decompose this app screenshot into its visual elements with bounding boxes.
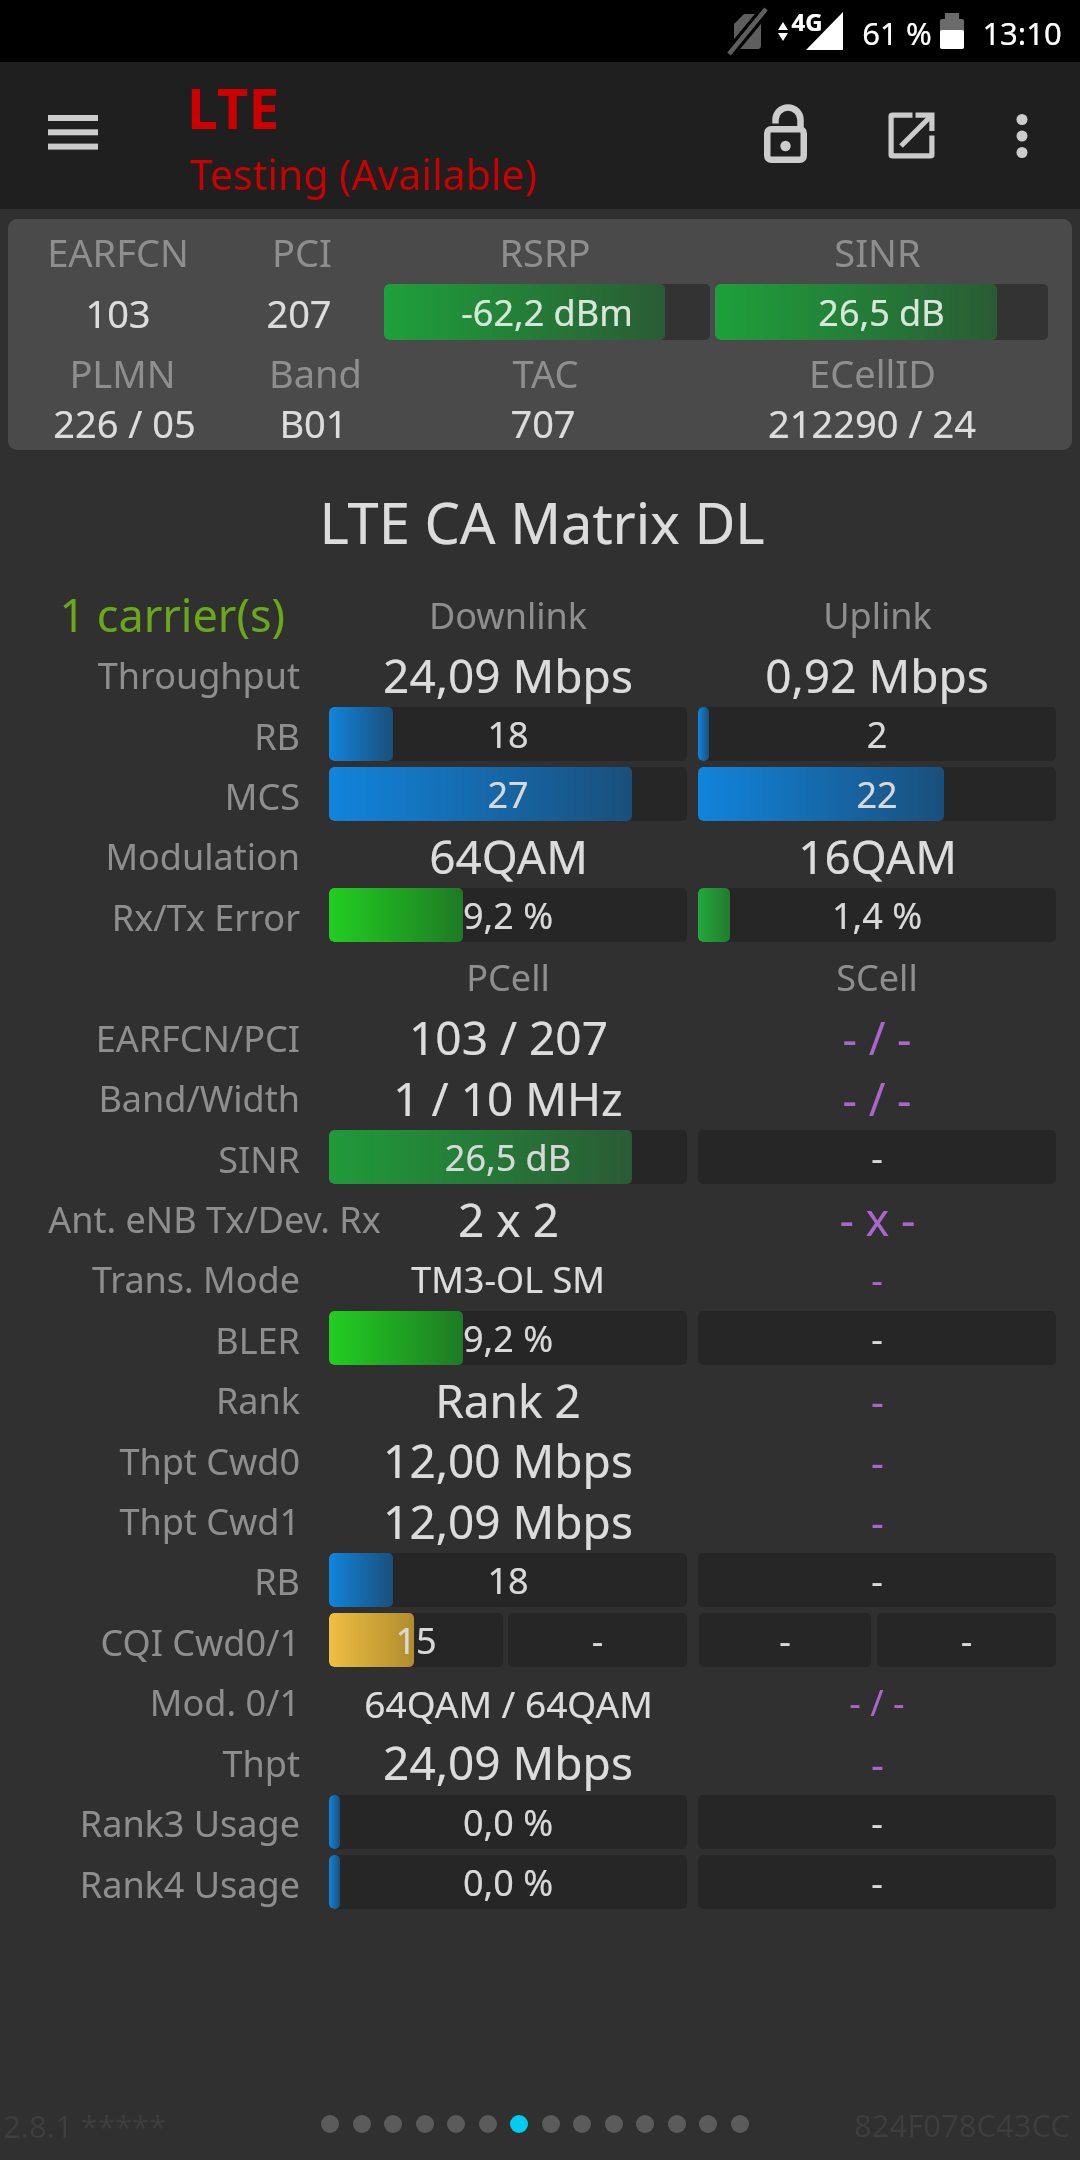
- staticText: -: [877, 1616, 1056, 1665]
- staticText: 13:10: [982, 12, 1062, 54]
- staticText: - x -: [839, 1188, 916, 1249]
- staticText: 207: [266, 287, 332, 339]
- staticText: MCS: [224, 772, 300, 821]
- staticText: Thpt: [222, 1739, 300, 1788]
- staticText: LTE CA Matrix DL: [319, 484, 765, 560]
- staticText: Downlink: [429, 591, 587, 640]
- button[interactable]: Page 1: [314, 2108, 346, 2140]
- button[interactable]: Page 4: [409, 2108, 441, 2140]
- button[interactable]: Page 6: [472, 2108, 504, 2140]
- staticText: 707: [510, 397, 576, 449]
- staticText: -: [698, 1133, 1056, 1182]
- staticText: -: [871, 1255, 883, 1304]
- staticText: Mod. 0/1: [149, 1678, 300, 1727]
- staticText: 24,09 Mbps: [383, 644, 633, 707]
- button[interactable]: Page 11: [629, 2108, 661, 2140]
- staticText: Throughput: [97, 651, 300, 700]
- staticText: Band/Width: [98, 1074, 300, 1123]
- staticText: 226 / 05: [53, 397, 196, 449]
- staticText: 1,4 %: [698, 891, 1056, 940]
- staticText: 18: [329, 710, 687, 759]
- staticText: SCell: [836, 953, 918, 1002]
- staticText: 2 x 2: [458, 1188, 559, 1251]
- staticText: 1 / 10 MHz: [393, 1067, 623, 1130]
- staticText: TM3-OL SM: [411, 1255, 605, 1304]
- button[interactable]: More options: [967, 81, 1077, 191]
- staticText: PLMN: [69, 347, 176, 399]
- staticText: Rank: [215, 1376, 300, 1425]
- staticText: ECellID: [809, 347, 936, 399]
- staticText: 9,2 %: [329, 1314, 687, 1363]
- staticText: CQI Cwd0/1: [100, 1618, 300, 1667]
- staticText: Band: [269, 347, 362, 399]
- staticText: SINR: [834, 226, 921, 278]
- staticText: Trans. Mode: [92, 1255, 300, 1304]
- staticText: Ant. eNB Tx/Dev. Rx: [48, 1195, 381, 1244]
- staticText: Thpt Cwd0: [119, 1437, 300, 1486]
- staticText: -62,2 dBm: [384, 288, 710, 337]
- button[interactable]: Unlock: [730, 79, 841, 190]
- staticText: 26,5 dB: [715, 288, 1048, 337]
- staticText: 26,5 dB: [329, 1133, 687, 1182]
- staticText: -: [871, 1434, 884, 1488]
- button[interactable]: Page 2: [346, 2108, 378, 2140]
- staticText: 12,09 Mbps: [383, 1490, 633, 1553]
- button[interactable]: Page 10: [598, 2108, 630, 2140]
- staticText: TAC: [512, 347, 579, 399]
- staticText: 2: [698, 710, 1056, 759]
- staticText: -: [508, 1616, 687, 1665]
- staticText: LTE: [187, 70, 280, 145]
- staticText: Rank3 Usage: [79, 1799, 300, 1848]
- staticText: Rank4 Usage: [79, 1860, 300, 1909]
- button[interactable]: Page 7: [503, 2108, 535, 2140]
- staticText: -: [699, 1616, 871, 1665]
- staticText: Modulation: [105, 832, 300, 881]
- button[interactable]: Navigation menu: [18, 77, 128, 187]
- staticText: RB: [254, 712, 300, 761]
- staticText: RB: [254, 1557, 300, 1606]
- staticText: 12,00 Mbps: [383, 1429, 633, 1492]
- staticText: 22: [698, 770, 1056, 819]
- staticText: Rx/Tx Error: [111, 893, 300, 942]
- staticText: 18: [329, 1556, 687, 1605]
- staticText: 64QAM / 64QAM: [364, 1678, 653, 1728]
- button[interactable]: Page 5: [440, 2108, 472, 2140]
- button[interactable]: Page 8: [535, 2108, 567, 2140]
- staticText: PCell: [466, 953, 550, 1002]
- staticText: 64QAM: [429, 825, 588, 888]
- button[interactable]: Page 9: [566, 2108, 598, 2140]
- staticText: -: [871, 1373, 884, 1427]
- staticText: 0,92 Mbps: [765, 644, 989, 707]
- staticText: 61 %: [862, 12, 932, 54]
- staticText: Thpt Cwd1: [119, 1497, 300, 1546]
- staticText: -: [698, 1556, 1056, 1605]
- staticText: 16QAM: [798, 825, 957, 888]
- staticText: BLER: [215, 1316, 300, 1365]
- staticText: Uplink: [823, 591, 932, 640]
- staticText: 2.8.1 *****: [3, 2105, 167, 2147]
- button[interactable]: Page 13: [692, 2108, 724, 2140]
- staticText: 1 carrier(s): [59, 584, 285, 645]
- staticText: 15: [329, 1616, 503, 1665]
- staticText: EARFCN: [47, 226, 189, 278]
- staticText: 27: [329, 770, 687, 819]
- staticText: -: [871, 1736, 884, 1790]
- staticText: 103: [85, 287, 151, 339]
- button[interactable]: Open in new window: [856, 80, 967, 191]
- staticText: - / -: [842, 1068, 912, 1129]
- staticText: 4G: [791, 5, 823, 38]
- staticText: 0,0 %: [329, 1858, 687, 1907]
- staticText: - / -: [849, 1678, 905, 1727]
- staticText: -: [698, 1314, 1056, 1363]
- staticText: RSRP: [499, 226, 591, 278]
- button[interactable]: Page 3: [377, 2108, 409, 2140]
- staticText: 24,09 Mbps: [383, 1731, 633, 1794]
- staticText: SINR: [218, 1135, 300, 1184]
- staticText: 824F078C43CC: [854, 2104, 1071, 2146]
- button[interactable]: Page 14: [724, 2108, 756, 2140]
- button[interactable]: Page 12: [661, 2108, 693, 2140]
- staticText: B01: [279, 397, 348, 449]
- staticText: -: [698, 1858, 1056, 1907]
- staticText: Testing (Available): [190, 146, 537, 202]
- staticText: EARFCN/PCI: [95, 1014, 300, 1063]
